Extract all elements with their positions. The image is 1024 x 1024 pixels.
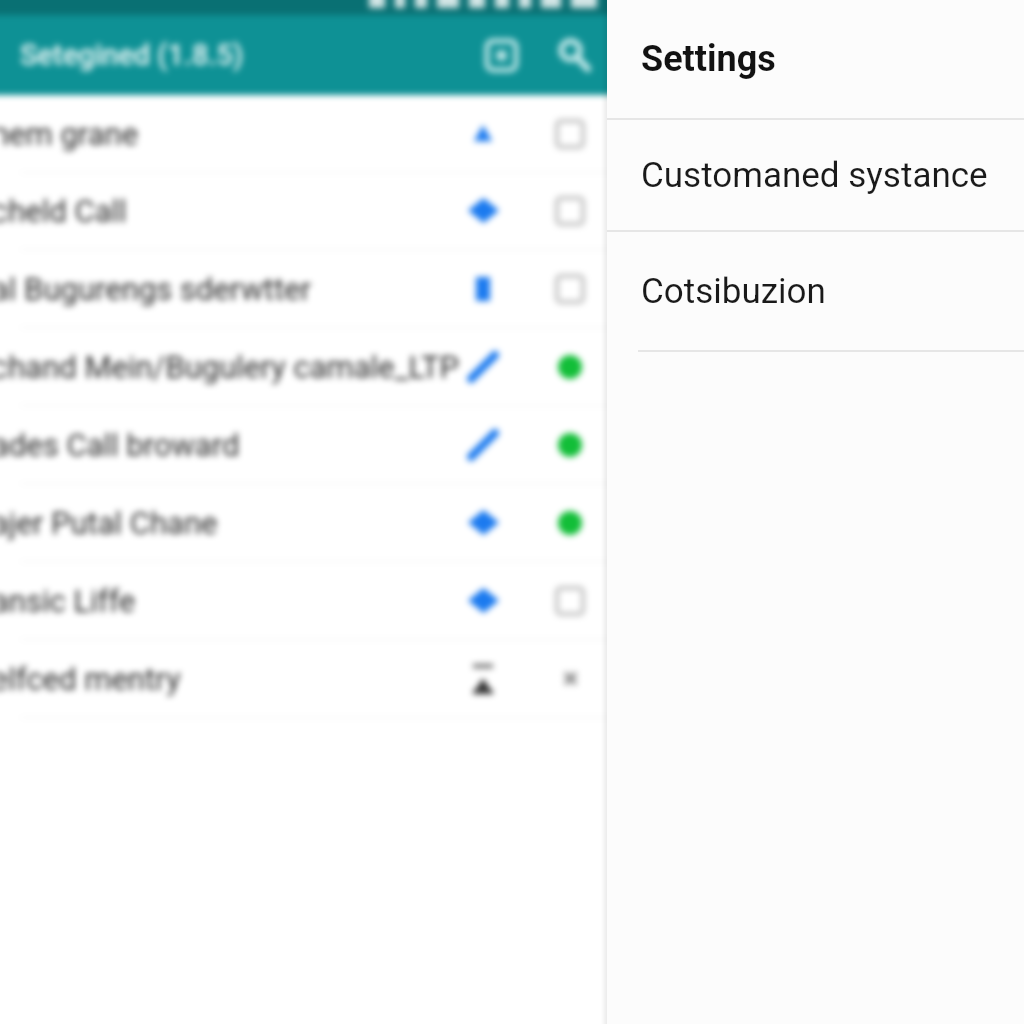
button[interactable]: Search bbox=[539, 20, 607, 90]
button[interactable]: Customaned systance bbox=[607, 120, 1024, 230]
button[interactable]: elfced mentry bbox=[0, 640, 607, 717]
staticText: ansic Liffe bbox=[0, 583, 136, 619]
staticText: ajer Putal Chane bbox=[0, 505, 218, 541]
staticText: cheld Call bbox=[0, 193, 127, 229]
button[interactable]: ansic Liffe bbox=[0, 562, 607, 639]
button[interactable]: hem grane bbox=[0, 95, 607, 172]
staticText: Setegined (1.8.5) bbox=[20, 38, 244, 72]
button[interactable]: chand Mein/Bugulery camale_LTP bbox=[0, 328, 607, 405]
staticText: ades Call broward bbox=[0, 427, 240, 463]
button[interactable]: Cotsibuzion bbox=[607, 232, 1024, 350]
button[interactable]: cheld Call bbox=[0, 172, 607, 249]
button[interactable]: Settings bbox=[607, 0, 1024, 118]
staticText: chand Mein/Bugulery camale_LTP bbox=[0, 349, 460, 385]
button[interactable]: Stop bbox=[466, 20, 536, 90]
button[interactable]: al Bugurengs sderwtter bbox=[0, 250, 607, 327]
button[interactable]: ades Call broward bbox=[0, 406, 607, 483]
staticText: al Bugurengs sderwtter bbox=[0, 271, 312, 307]
staticText: hem grane bbox=[0, 116, 146, 152]
button[interactable]: ajer Putal Chane bbox=[0, 484, 607, 561]
staticText: Cotsibuzion bbox=[641, 271, 826, 312]
staticText: elfced mentry bbox=[0, 661, 189, 697]
staticText: Customaned systance bbox=[641, 155, 988, 196]
staticText: Settings bbox=[641, 38, 776, 80]
